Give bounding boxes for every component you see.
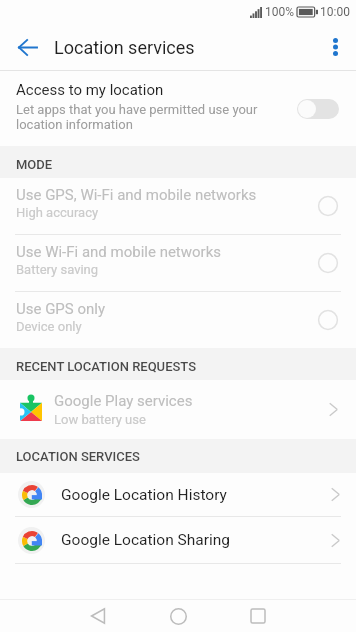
staticText: Device only xyxy=(16,319,82,334)
staticText: Low battery use xyxy=(54,412,146,427)
staticText: Use GPS only xyxy=(16,300,106,318)
button[interactable]: Google Location History xyxy=(0,473,356,516)
staticText: 100% xyxy=(265,5,295,19)
staticText: Google Play services xyxy=(54,392,193,410)
button[interactable]: Use Wi-Fi and mobile networks xyxy=(0,235,356,291)
staticText: LOCATION SERVICES xyxy=(16,449,140,464)
button[interactable]: Recents xyxy=(234,600,282,632)
staticText: Google Location Sharing xyxy=(61,531,331,549)
staticText: Let apps that you have permitted use you… xyxy=(16,102,289,132)
staticText: Use GPS, Wi-Fi and mobile networks xyxy=(16,186,257,204)
button[interactable]: Back xyxy=(10,30,44,64)
staticText: Access to my location xyxy=(16,81,164,99)
staticText: High accuracy xyxy=(16,205,99,220)
button[interactable]: Google Play services xyxy=(0,380,356,439)
button[interactable]: Use GPS only xyxy=(0,292,356,348)
staticText: Battery saving xyxy=(16,262,99,277)
staticText: RECENT LOCATION REQUESTS xyxy=(16,359,197,374)
staticText: Location services xyxy=(54,37,195,58)
button[interactable]: More options xyxy=(318,30,352,64)
button[interactable]: Use GPS, Wi-Fi and mobile networks xyxy=(0,178,356,234)
other: Use Wi-Fi and mobile networks xyxy=(318,253,338,273)
staticText: MODE xyxy=(16,157,53,172)
button[interactable]: Home xyxy=(154,600,202,632)
other: Use GPS only xyxy=(318,310,338,330)
staticText: 10:00 xyxy=(320,5,350,19)
button[interactable]: Access to my location xyxy=(0,71,356,146)
staticText: Google Location History xyxy=(61,486,331,504)
other: Use GPS, Wi-Fi and mobile networks xyxy=(318,196,338,216)
button[interactable]: Google Location Sharing xyxy=(0,517,356,563)
button[interactable]: Access to my location xyxy=(297,99,339,119)
staticText: Use Wi-Fi and mobile networks xyxy=(16,243,222,261)
button[interactable]: Back xyxy=(74,600,122,632)
